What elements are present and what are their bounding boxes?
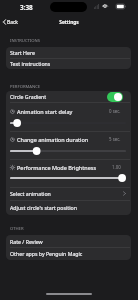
staticText: Back (7, 19, 18, 26)
staticText: Animation start delay (17, 108, 73, 115)
button[interactable]: Animation start delay slider (6, 117, 131, 129)
staticText: Select animation (10, 190, 51, 197)
staticText: Performance Mode Brightness (17, 164, 97, 171)
staticText: Circle Gradient (10, 93, 47, 100)
staticText: 5 sec. (109, 136, 121, 142)
staticText: 0 sec. (109, 108, 121, 114)
staticText: Other apps by Penguin Magic (10, 250, 83, 257)
button[interactable]: Start Here (6, 47, 131, 58)
button[interactable]: Change animation duration slider (6, 145, 131, 157)
staticText: Settings (59, 19, 79, 26)
button[interactable]: Select animation (6, 187, 131, 200)
button[interactable]: Rate / Review (6, 235, 131, 247)
staticText: Rate / Review (10, 238, 43, 245)
button[interactable]: Back (3, 16, 27, 28)
button[interactable]: Performance Mode Brightness slider (6, 172, 131, 184)
button[interactable]: Adjust circle's start position (6, 200, 131, 215)
staticText: Text instructions (10, 60, 51, 67)
button[interactable]: Toggle Circle Gradient (107, 92, 123, 102)
button[interactable]: Circle Gradient (6, 91, 131, 102)
staticText: OTHER (10, 226, 24, 232)
staticText: Start Here (10, 49, 35, 56)
staticText: Adjust circle's start position (10, 204, 77, 211)
button[interactable]: Other apps by Penguin Magic (6, 247, 131, 259)
staticText: Change animation duration (17, 136, 89, 143)
button[interactable]: Text instructions (6, 58, 131, 69)
staticText: 1.00 (112, 164, 121, 170)
staticText: PERFORMANCE (10, 84, 41, 90)
staticText: 3:38 (20, 3, 33, 12)
staticText: INSTRUCTIONS (10, 38, 41, 44)
